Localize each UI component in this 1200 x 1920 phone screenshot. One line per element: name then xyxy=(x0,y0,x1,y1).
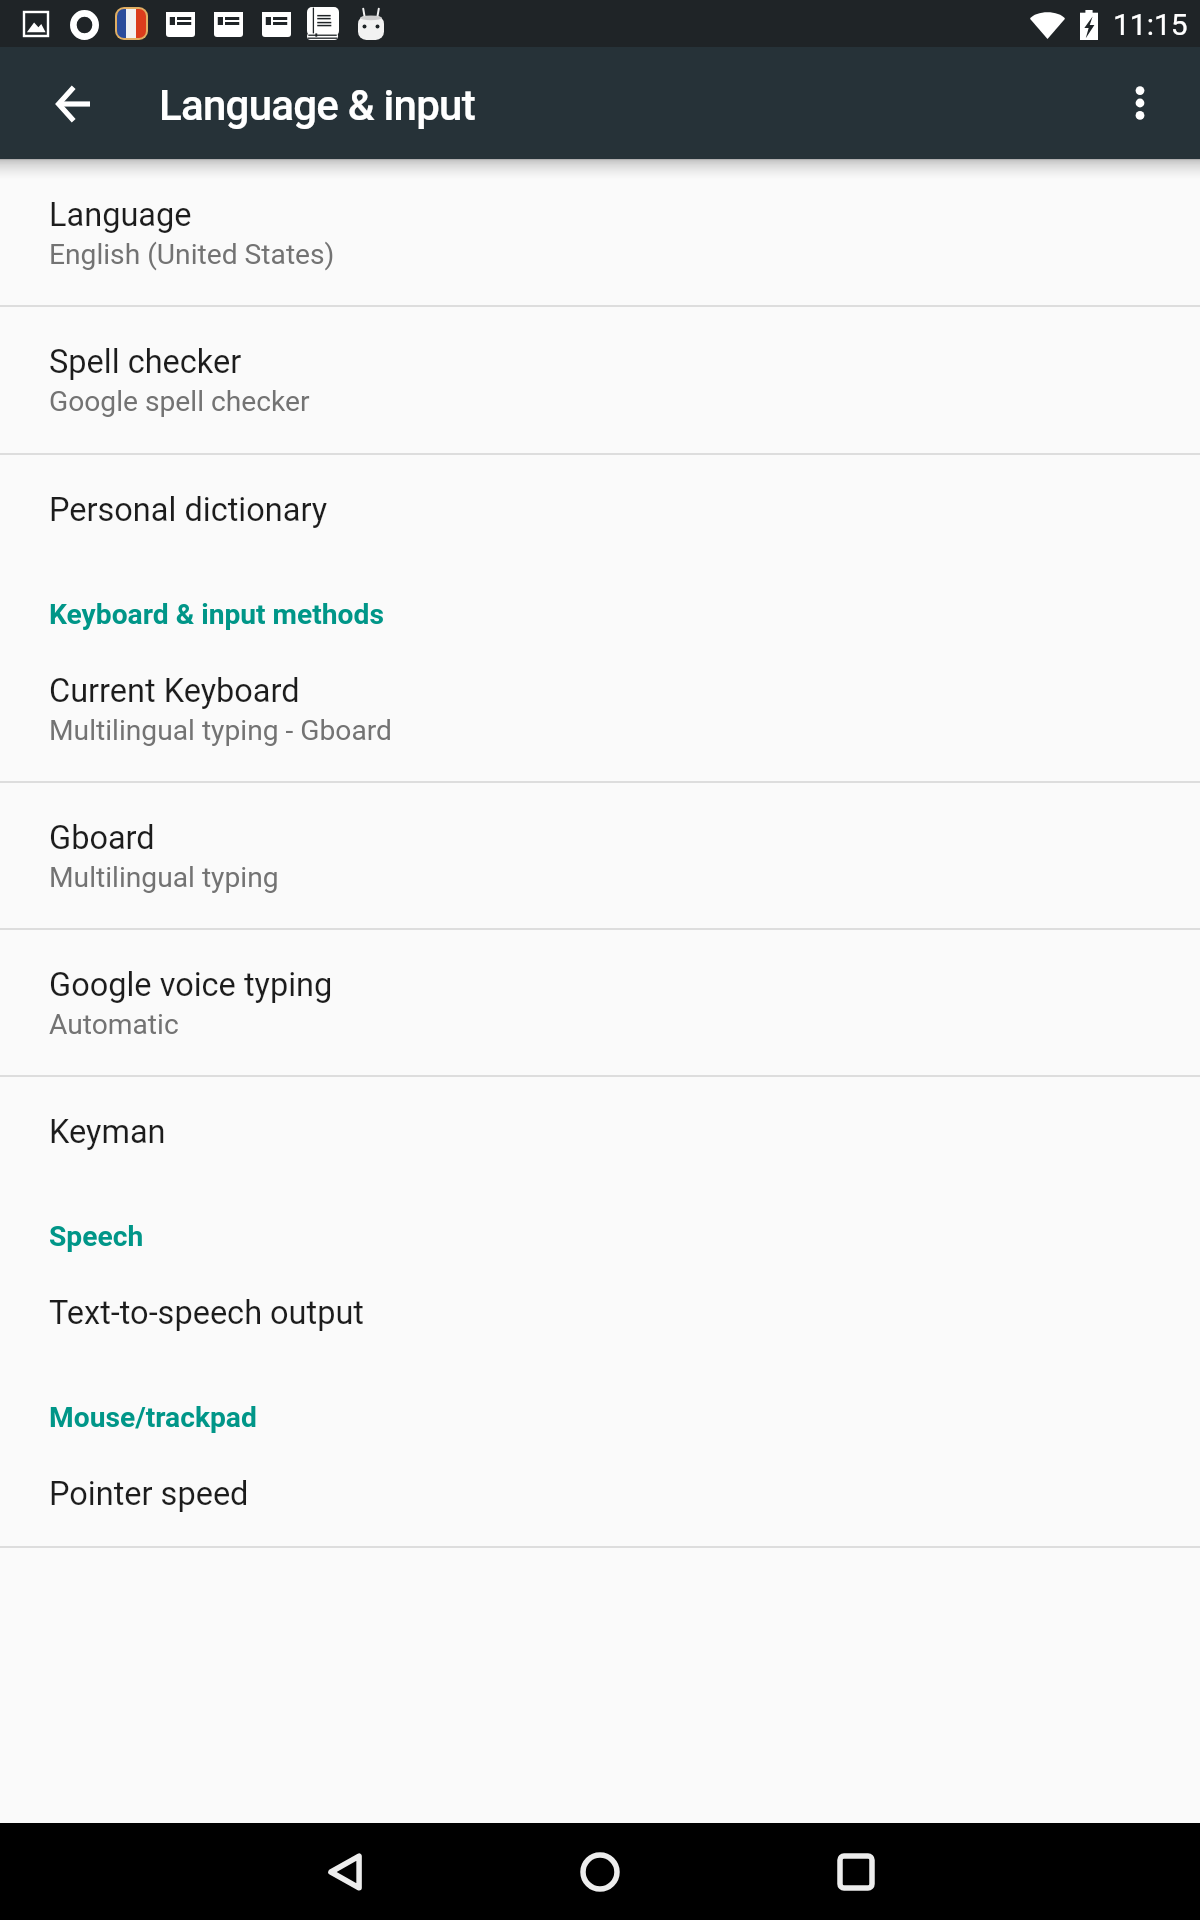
staticText: Keyboard & input methods xyxy=(49,598,384,631)
button[interactable]: Navigate up xyxy=(25,56,121,152)
button[interactable]: Recent apps xyxy=(808,1824,904,1920)
staticText: Multilingual typing - Gboard xyxy=(49,714,392,747)
button[interactable]: Back xyxy=(297,1824,393,1920)
button[interactable]: Text-to-speech output xyxy=(0,1294,1200,1332)
staticText: Current Keyboard xyxy=(49,672,300,710)
staticText: English (United States) xyxy=(49,238,335,271)
staticText: Gboard xyxy=(49,819,155,857)
button[interactable]: Google voice typing xyxy=(0,930,1200,1075)
staticText: Text-to-speech output xyxy=(49,1294,364,1332)
staticText: Language & input xyxy=(159,81,475,130)
staticText: Mouse/trackpad xyxy=(49,1401,257,1434)
staticText: Spell checker xyxy=(49,343,242,381)
button[interactable]: Pointer speed xyxy=(0,1475,1200,1546)
staticText: Multilingual typing xyxy=(49,861,279,894)
button[interactable]: Gboard xyxy=(0,783,1200,928)
button[interactable]: More options xyxy=(1092,55,1188,151)
staticText: Google voice typing xyxy=(49,966,333,1004)
button[interactable]: Current Keyboard xyxy=(0,672,1200,781)
staticText: Pointer speed xyxy=(49,1475,249,1513)
staticText: Language xyxy=(49,196,192,234)
button[interactable]: Personal dictionary xyxy=(0,455,1200,529)
button[interactable]: Spell checker xyxy=(0,307,1200,453)
staticText: 11:15 xyxy=(1113,7,1188,42)
staticText: Keyman xyxy=(49,1113,166,1151)
button[interactable]: Keyman xyxy=(0,1077,1200,1151)
button[interactable]: Language xyxy=(0,159,1200,305)
button[interactable]: Home xyxy=(552,1824,648,1920)
staticText: Speech xyxy=(49,1220,144,1253)
staticText: Google spell checker xyxy=(49,385,310,418)
staticText: Personal dictionary xyxy=(49,491,328,529)
staticText: Automatic xyxy=(49,1008,179,1041)
